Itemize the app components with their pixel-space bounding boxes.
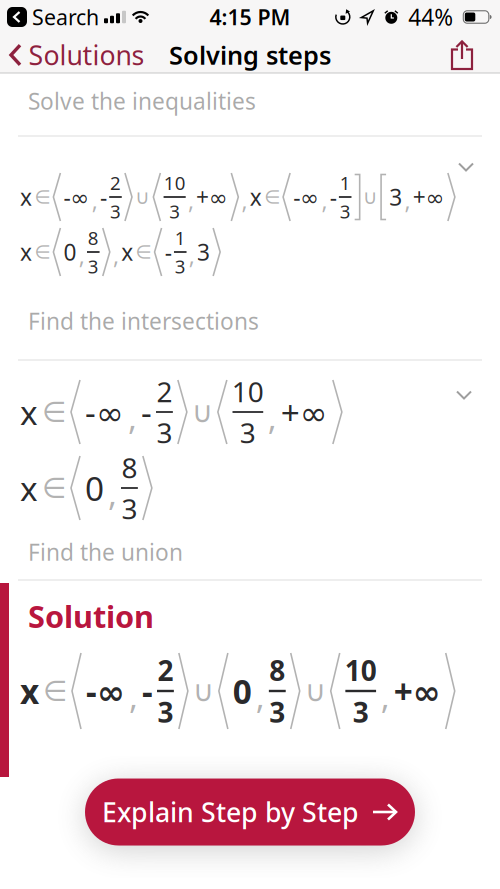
staticText: +∞ bbox=[394, 669, 441, 713]
staticText: -∞ bbox=[85, 390, 124, 434]
staticText: , bbox=[189, 240, 195, 270]
staticText: 3 bbox=[340, 199, 351, 224]
staticText: +∞ bbox=[413, 182, 445, 212]
staticText: 3 bbox=[169, 199, 180, 224]
staticText: 0 bbox=[85, 466, 104, 510]
staticText: 8 bbox=[88, 225, 99, 250]
staticText: 3 bbox=[389, 182, 402, 212]
staticText: 44% bbox=[408, 2, 453, 32]
staticText: 3 bbox=[156, 414, 172, 451]
staticText: 3 bbox=[269, 693, 285, 730]
staticText: x bbox=[20, 466, 38, 510]
staticText: , bbox=[113, 240, 119, 270]
staticText: Find the union bbox=[28, 537, 183, 567]
staticText: 10 bbox=[164, 170, 186, 195]
staticText: ∈ bbox=[34, 186, 50, 208]
staticText: - bbox=[100, 182, 107, 212]
staticText: Explain Step by Step bbox=[102, 794, 359, 830]
staticText: ∈ bbox=[264, 186, 280, 208]
button[interactable]: Explain Step by Step bbox=[85, 778, 415, 845]
button[interactable]: Expand step bbox=[446, 380, 482, 409]
staticText: - bbox=[141, 390, 152, 434]
staticText: +∞ bbox=[281, 390, 328, 434]
staticText: 3 bbox=[175, 254, 186, 279]
staticText: -∞ bbox=[64, 182, 90, 212]
staticText: , bbox=[128, 395, 137, 439]
staticText: 2 bbox=[157, 652, 173, 689]
staticText: , bbox=[108, 471, 117, 515]
staticText: 4:15 PM bbox=[209, 3, 290, 31]
staticText: Solution bbox=[28, 596, 154, 636]
staticText: 3 bbox=[240, 414, 256, 451]
staticText: 3 bbox=[353, 693, 369, 730]
staticText: 0 bbox=[233, 669, 252, 713]
staticText: , bbox=[404, 185, 410, 215]
staticText: Find the intersections bbox=[28, 306, 259, 336]
staticText: ∈ bbox=[135, 241, 151, 263]
staticText: x bbox=[250, 182, 262, 212]
staticText: x bbox=[20, 237, 32, 267]
staticText: ∈ bbox=[43, 675, 67, 707]
staticText: -∞ bbox=[293, 182, 319, 212]
staticText: 2 bbox=[110, 170, 121, 195]
staticText: , bbox=[129, 674, 138, 718]
staticText: Solving steps bbox=[169, 38, 331, 72]
button[interactable]: Share bbox=[443, 32, 481, 78]
button[interactable]: Solutions bbox=[0, 37, 144, 73]
staticText: x bbox=[121, 237, 133, 267]
staticText: - bbox=[330, 182, 337, 212]
staticText: Search bbox=[32, 3, 99, 31]
staticText: Solutions bbox=[28, 37, 144, 73]
staticText: , bbox=[92, 185, 98, 215]
staticText: 10 bbox=[345, 652, 377, 689]
staticText: x bbox=[20, 182, 32, 212]
staticText: 3 bbox=[157, 693, 173, 730]
staticText: , bbox=[381, 674, 390, 718]
staticText: , bbox=[79, 240, 85, 270]
staticText: 1 bbox=[175, 225, 186, 250]
staticText: 2 bbox=[156, 373, 172, 410]
staticText: , bbox=[321, 185, 327, 215]
staticText: ∪ bbox=[135, 186, 150, 208]
button[interactable]: Expand step bbox=[448, 152, 484, 181]
staticText: ∪ bbox=[305, 674, 326, 708]
staticText: 1 bbox=[340, 170, 351, 195]
staticText: 8 bbox=[121, 449, 137, 486]
staticText: ∪ bbox=[193, 674, 214, 708]
staticText: , bbox=[241, 185, 247, 215]
staticText: Solve the inequalities bbox=[28, 86, 256, 116]
staticText: 10 bbox=[232, 373, 264, 410]
staticText: , bbox=[188, 185, 194, 215]
staticText: ∪ bbox=[192, 395, 213, 429]
staticText: ∈ bbox=[42, 396, 66, 428]
staticText: -∞ bbox=[86, 669, 125, 713]
staticText: 3 bbox=[110, 199, 121, 224]
staticText: 8 bbox=[269, 652, 285, 689]
staticText: - bbox=[142, 669, 153, 713]
staticText: - bbox=[165, 237, 172, 267]
staticText: 3 bbox=[197, 237, 210, 267]
staticText: , bbox=[256, 674, 265, 718]
staticText: ∈ bbox=[42, 472, 66, 504]
staticText: 3 bbox=[88, 254, 99, 279]
staticText: 0 bbox=[64, 237, 77, 267]
staticText: , bbox=[268, 395, 277, 439]
staticText: 3 bbox=[121, 490, 137, 527]
staticText: +∞ bbox=[196, 182, 228, 212]
staticText: ∪ bbox=[363, 186, 378, 208]
staticText: x bbox=[20, 390, 38, 434]
staticText: x bbox=[20, 669, 39, 713]
staticText: ∈ bbox=[34, 241, 50, 263]
